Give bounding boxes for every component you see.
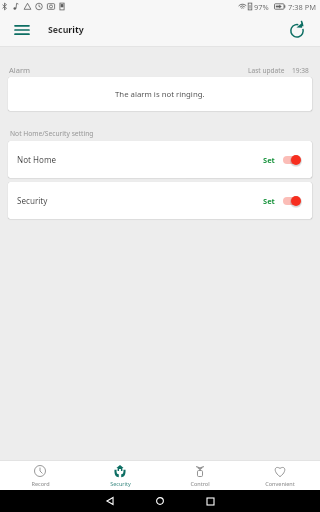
staticText: 7:38 PM xyxy=(288,2,317,12)
button[interactable]: Record xyxy=(0,460,80,490)
staticText: Last update xyxy=(248,66,285,75)
staticText: Convenient xyxy=(265,480,295,487)
staticText: Not Home xyxy=(17,154,57,165)
button[interactable]: Control xyxy=(160,460,240,490)
staticText: The alarm is not ringing. xyxy=(115,89,205,100)
button[interactable]: Not Home xyxy=(8,141,312,178)
staticText: Security xyxy=(48,24,84,36)
button[interactable]: Home xyxy=(141,490,179,512)
button[interactable]: Toggle setting xyxy=(283,195,302,207)
button[interactable]: Open navigation menu xyxy=(9,17,35,43)
staticText: Control xyxy=(190,480,210,487)
staticText: Security xyxy=(110,480,131,487)
button[interactable]: Back xyxy=(91,490,129,512)
staticText: Set xyxy=(263,155,275,165)
button[interactable]: Convenient xyxy=(240,460,320,490)
staticText: Alarm xyxy=(9,65,31,75)
button[interactable]: Toggle setting xyxy=(283,154,302,166)
button[interactable]: Security xyxy=(80,460,160,490)
staticText: Record xyxy=(31,480,50,487)
button[interactable]: Recent apps xyxy=(191,490,229,512)
button[interactable]: The alarm is not ringing. xyxy=(8,77,312,111)
button[interactable]: Security xyxy=(8,182,312,219)
button[interactable]: Refresh xyxy=(284,17,310,43)
staticText: 19:38 xyxy=(292,66,309,75)
staticText: Not Home/Security setting xyxy=(10,129,94,138)
staticText: Security xyxy=(17,195,48,206)
staticText: 97% xyxy=(254,2,269,12)
staticText: Set xyxy=(263,196,275,206)
